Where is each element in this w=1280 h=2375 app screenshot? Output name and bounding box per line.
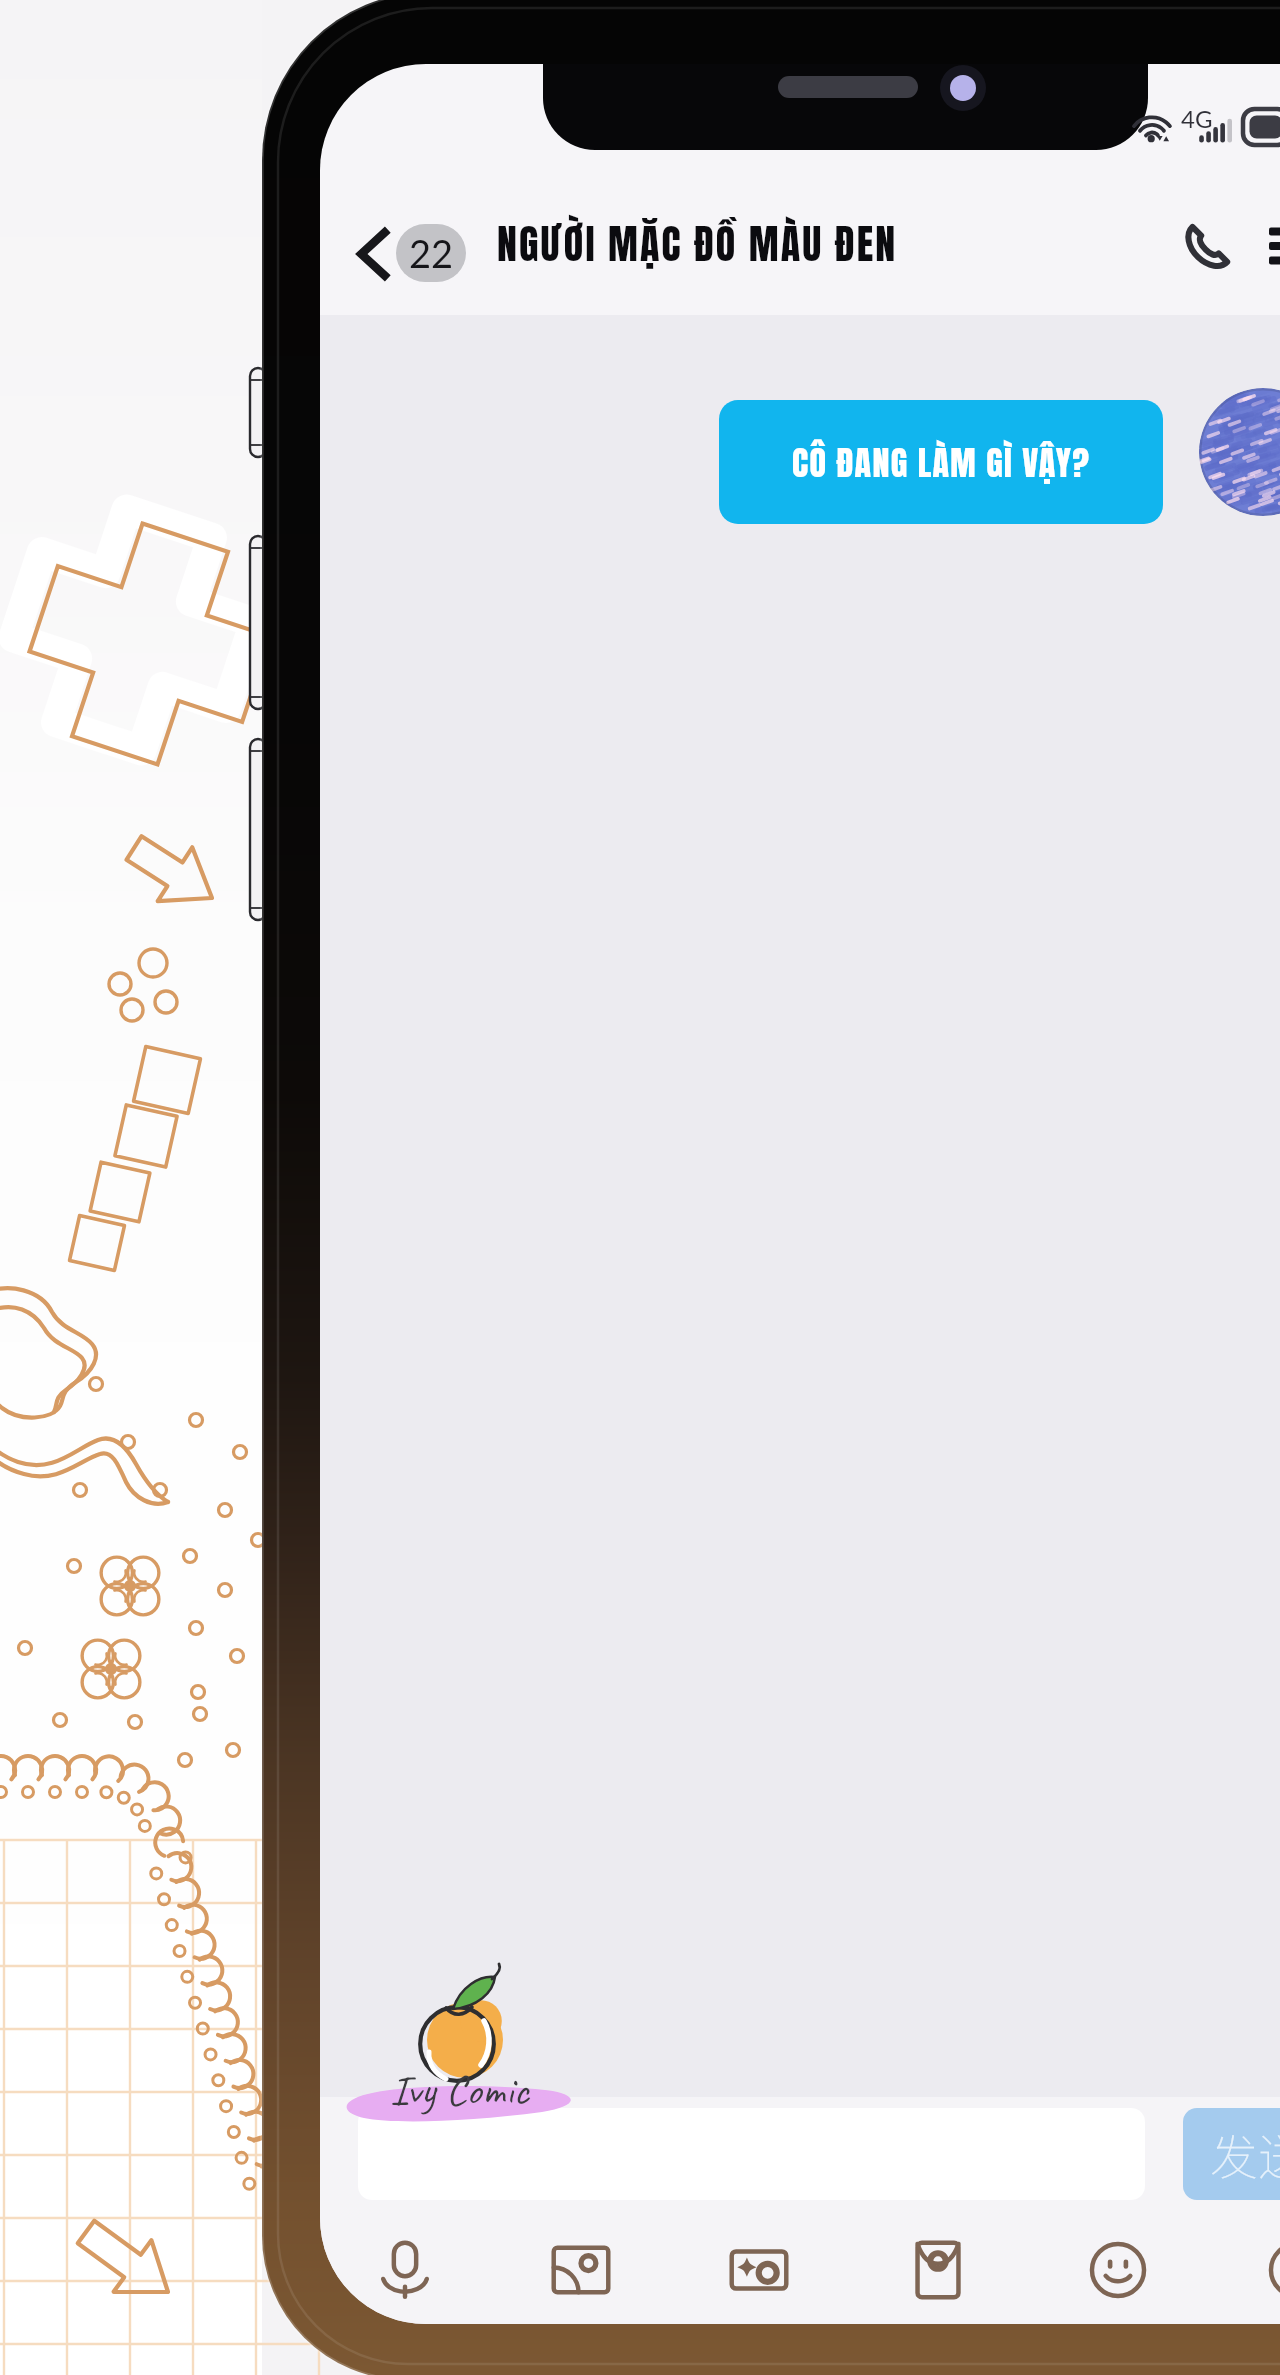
button[interactable]: Voice message xyxy=(345,2216,465,2324)
staticText: NGƯỜI MẶC ĐỒ MÀU ĐEN xyxy=(497,214,898,274)
staticText: 发送 xyxy=(1210,2119,1280,2189)
button[interactable]: Emoji xyxy=(1058,2216,1178,2324)
button[interactable]: Gift xyxy=(878,2216,998,2324)
staticText: 22 xyxy=(409,230,454,276)
staticText: Ivy Comic xyxy=(390,2063,529,2117)
button[interactable]: Back xyxy=(350,218,404,290)
button[interactable]: More options xyxy=(1258,206,1280,286)
button[interactable]: Message input xyxy=(358,2108,1145,2200)
button[interactable]: 22 xyxy=(396,224,466,282)
button[interactable]: Sticker xyxy=(699,2216,819,2324)
button[interactable]: Photo xyxy=(521,2216,641,2324)
button[interactable]: Profile picture xyxy=(1199,388,1280,516)
staticText: CÔ ĐANG LÀM GÌ VẬY? xyxy=(792,437,1091,488)
button[interactable]: 发送 xyxy=(1183,2108,1280,2200)
staticText: 4G xyxy=(1181,104,1213,133)
button[interactable]: More xyxy=(1237,2216,1280,2324)
button[interactable]: CÔ ĐANG LÀM GÌ VẬY? xyxy=(719,400,1163,524)
button[interactable]: Call xyxy=(1156,198,1256,294)
